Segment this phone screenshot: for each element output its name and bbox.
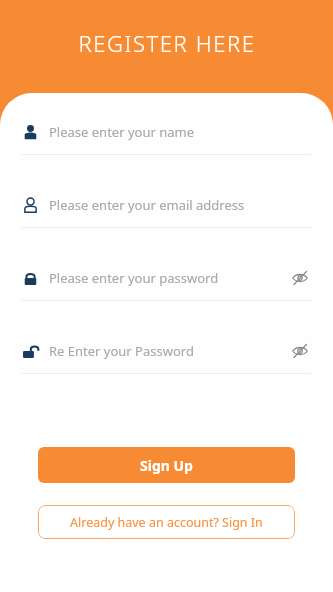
staticText: Please enter your email address (49, 196, 245, 214)
button[interactable]: Toggle password visibility (290, 268, 310, 288)
button[interactable]: Please enter your password (0, 265, 333, 338)
button[interactable]: Toggle password visibility (290, 341, 310, 361)
staticText: Already have an account? Sign In (70, 514, 263, 531)
button[interactable]: Please enter your email address (0, 192, 333, 265)
staticText: Please enter your password (49, 269, 219, 287)
button[interactable]: Re Enter your Password (0, 338, 333, 411)
button[interactable]: Sign Up (38, 447, 295, 483)
staticText: Re Enter your Password (49, 342, 194, 360)
button[interactable]: Please enter your name (0, 119, 333, 192)
staticText: Please enter your name (49, 123, 195, 141)
button[interactable]: Already have an account? Sign In (38, 505, 295, 539)
staticText: Sign Up (140, 456, 193, 475)
staticText: REGISTER HERE (78, 28, 256, 58)
